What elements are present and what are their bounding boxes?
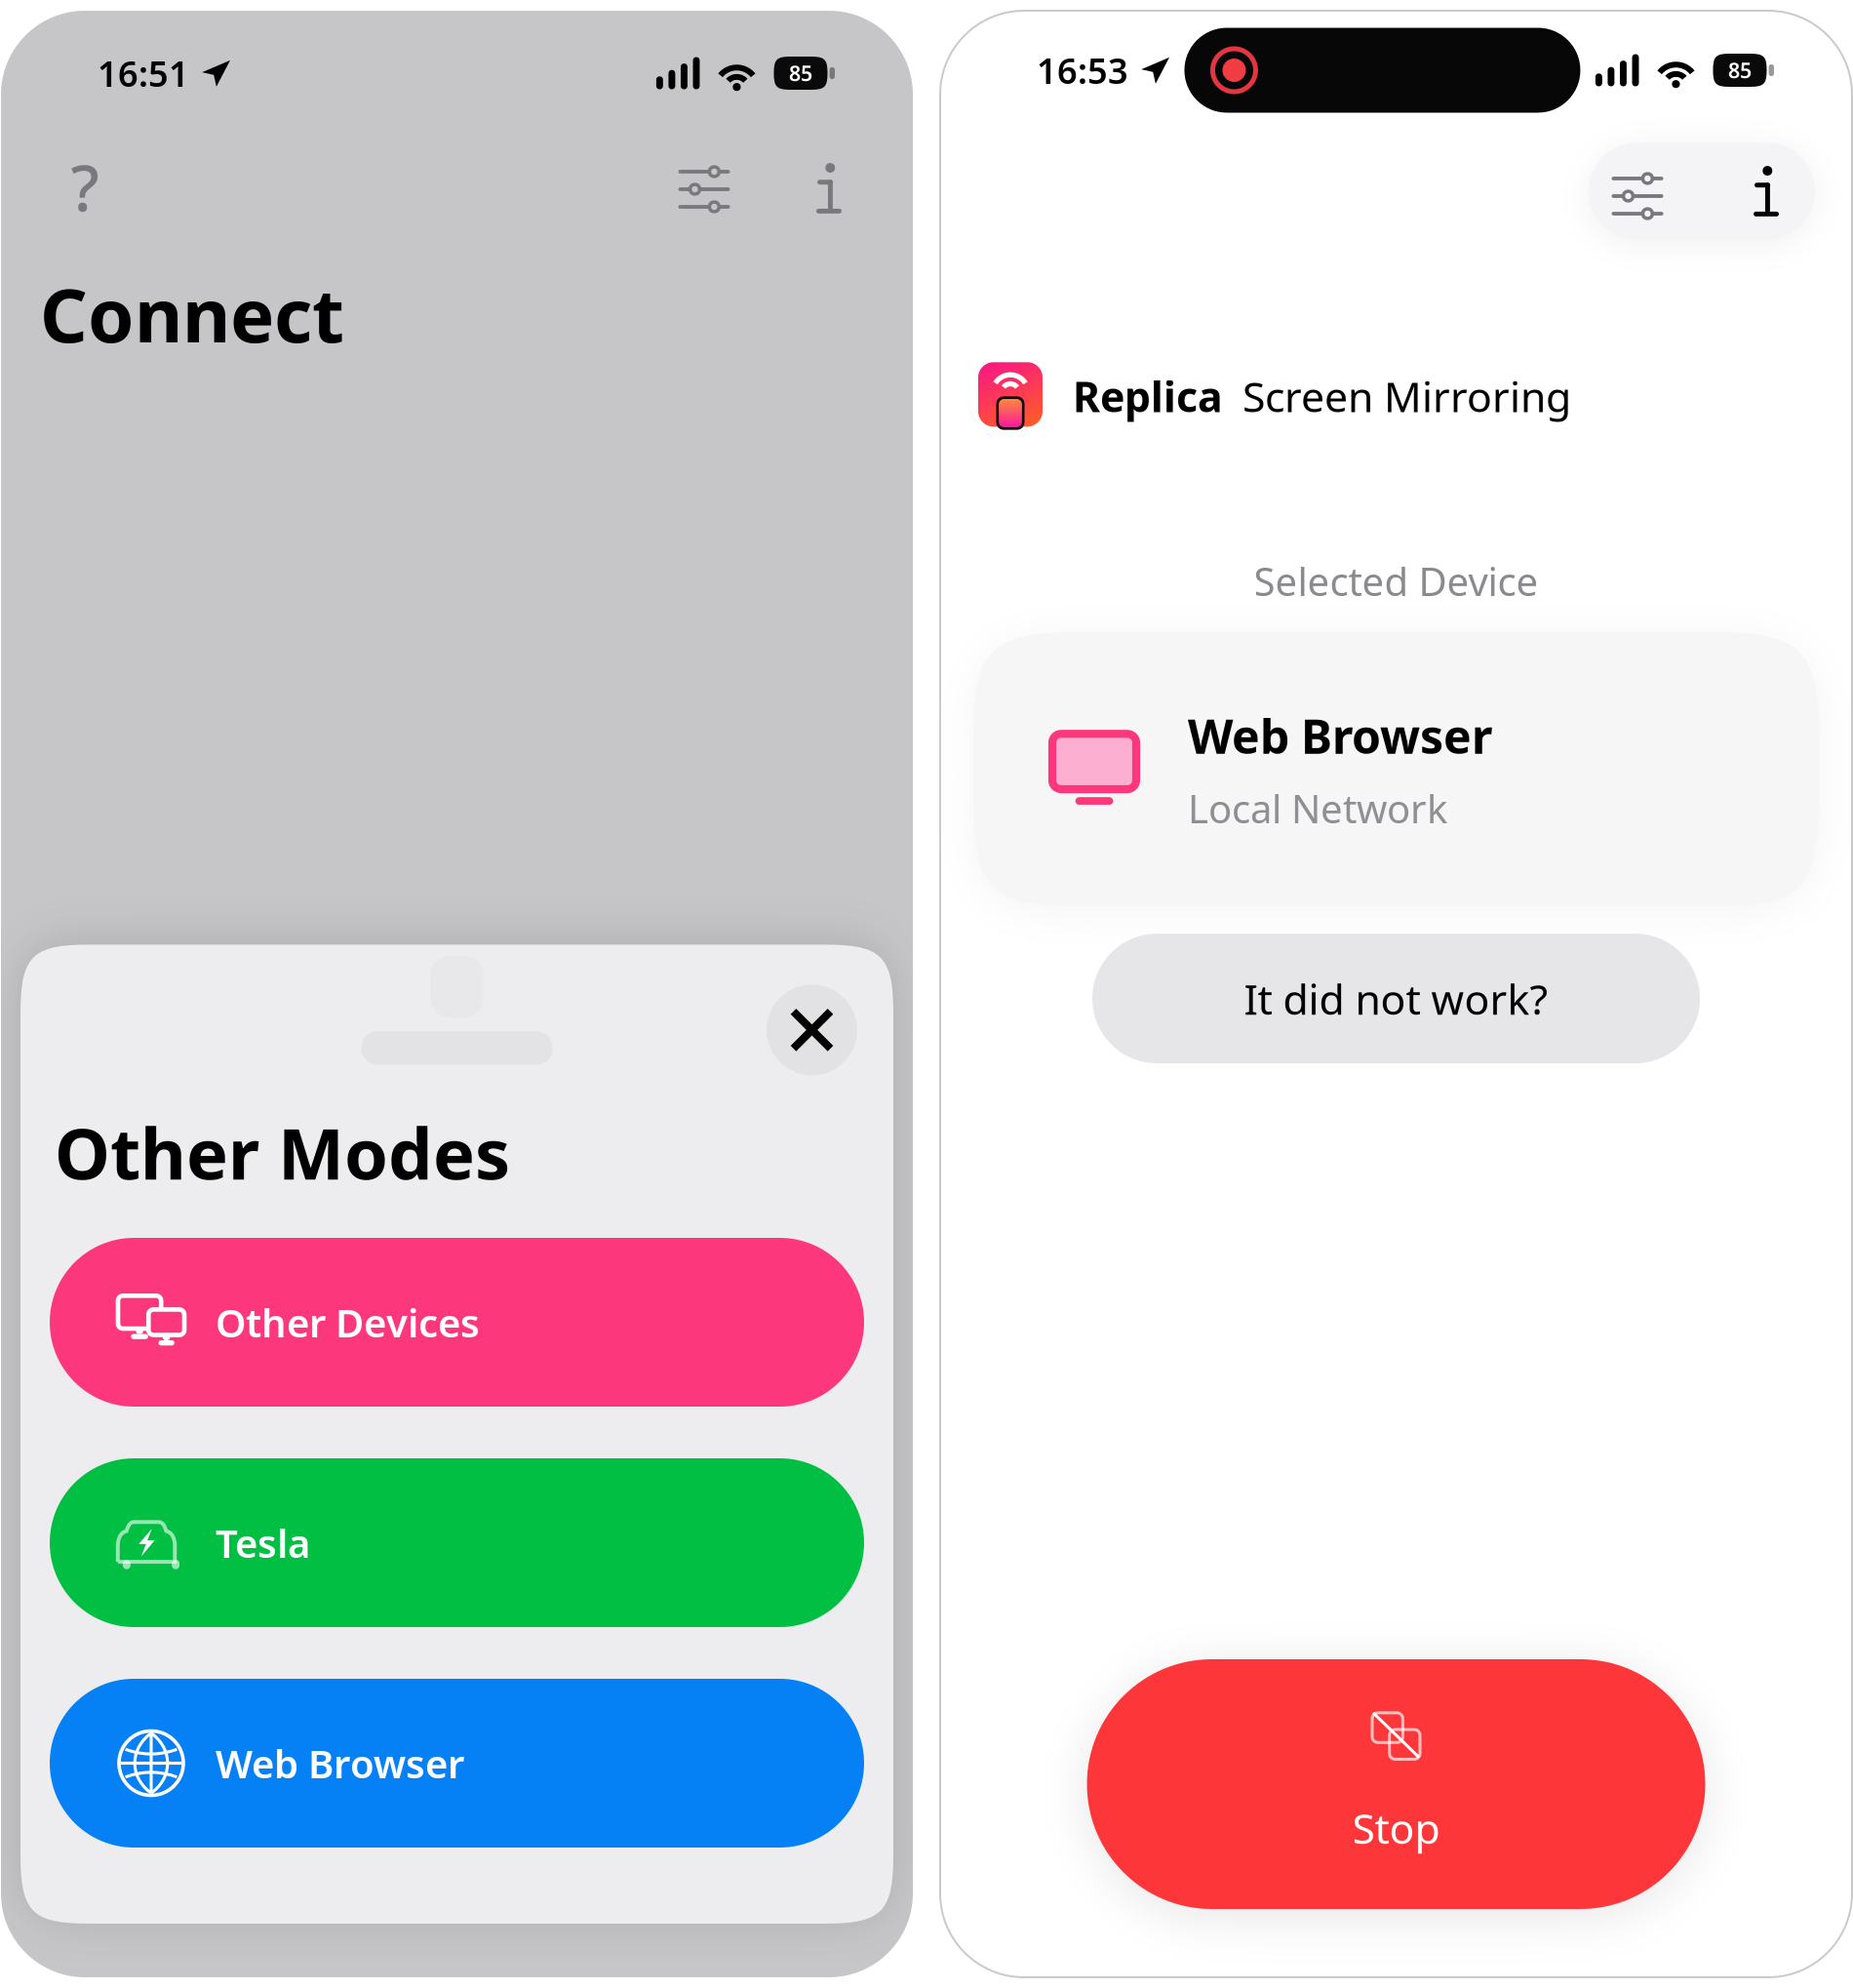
- button[interactable]: It did not work?: [1092, 934, 1700, 1063]
- button[interactable]: Other Devices: [50, 1238, 864, 1407]
- staticText: Other Modes: [55, 1106, 510, 1199]
- staticText: Replica: [1073, 368, 1223, 424]
- staticText: Selected Device: [1254, 555, 1538, 607]
- button[interactable]: Settings: [650, 125, 774, 244]
- button[interactable]: Information: [1694, 142, 1823, 240]
- button[interactable]: Stop: [1087, 1659, 1705, 1909]
- staticText: Tesla: [216, 1517, 310, 1569]
- staticText: 16:51: [98, 50, 189, 96]
- staticText: ?: [71, 144, 99, 229]
- button[interactable]: Web Browser: [973, 632, 1819, 906]
- button[interactable]: Settings: [1581, 138, 1694, 245]
- staticText: Screen Mirroring: [1242, 368, 1571, 424]
- button[interactable]: Tesla: [50, 1458, 864, 1627]
- staticText: 85: [1728, 56, 1752, 84]
- staticText: 85: [789, 59, 812, 87]
- staticText: Connect: [40, 264, 344, 363]
- staticText: Web Browser: [1188, 704, 1492, 767]
- button[interactable]: Information: [774, 126, 884, 243]
- staticText: Web Browser: [216, 1737, 464, 1789]
- staticText: Stop: [1352, 1800, 1440, 1855]
- button[interactable]: Close: [767, 985, 857, 1075]
- staticText: 16:53: [1037, 47, 1128, 94]
- button[interactable]: Web Browser: [50, 1679, 864, 1848]
- staticText: Local Network: [1188, 782, 1447, 834]
- staticText: It did not work?: [1244, 971, 1548, 1026]
- staticText: Other Devices: [216, 1296, 480, 1348]
- button[interactable]: Help: [30, 127, 139, 241]
